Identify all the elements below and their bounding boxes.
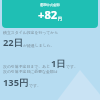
staticText: 22日	[3, 36, 23, 49]
staticText: 積立スタイル設定を行ってから	[3, 30, 59, 35]
staticText: 135円	[3, 76, 29, 89]
staticText: 円	[58, 16, 62, 21]
staticText: 運用中の金額	[40, 3, 60, 7]
staticText: です。	[66, 64, 78, 69]
staticText: 次の引落予定日に必要な金額は	[3, 69, 58, 74]
staticText: 1日	[51, 57, 66, 70]
staticText: です。	[29, 83, 41, 88]
staticText: が経過しました。	[23, 43, 55, 48]
staticText: +82	[38, 7, 58, 22]
staticText: 次の引落予定日まで、あと	[3, 64, 51, 69]
button[interactable]: 運用中の金額	[2, 0, 98, 28]
